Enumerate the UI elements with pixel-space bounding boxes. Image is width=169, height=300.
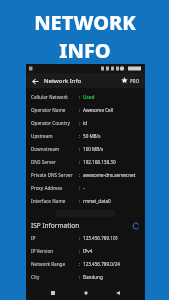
button[interactable]: DNS Server: [26, 155, 145, 168]
staticText: :: [79, 274, 81, 280]
staticText: 192.168.138.30: [83, 159, 116, 165]
staticText: INFO: [59, 37, 111, 64]
staticText: 123.456.789.101: [83, 235, 119, 241]
staticText: :: [79, 235, 81, 241]
button[interactable]: Proxy Address: [26, 181, 145, 194]
staticText: IP: [31, 235, 36, 241]
button[interactable]: Private DNS Server: [26, 168, 145, 181]
staticText: IPv4: [83, 248, 93, 254]
staticText: DNS Server: [31, 159, 56, 165]
button[interactable]: IP Version: [26, 244, 145, 257]
staticText: Cellular Network: [31, 94, 68, 100]
staticText: awesome-dns.server.net: [83, 172, 136, 178]
button[interactable]: PRO: [120, 77, 141, 84]
staticText: :: [79, 198, 81, 204]
staticText: :: [79, 107, 81, 113]
staticText: -: [83, 185, 85, 191]
staticText: :: [79, 248, 81, 254]
staticText: PRO: [130, 78, 140, 84]
button[interactable]: City: [26, 270, 145, 283]
staticText: Operator Name: [31, 107, 66, 113]
staticText: :: [79, 185, 81, 191]
button[interactable]: Refresh: [131, 221, 140, 230]
staticText: :: [79, 159, 81, 165]
button[interactable]: Upstream: [26, 129, 145, 142]
button[interactable]: Operator Name: [26, 103, 145, 116]
staticText: Private DNS Server: [31, 172, 73, 178]
staticText: :: [79, 120, 81, 126]
staticText: :: [79, 94, 81, 100]
staticText: 50 MB/s: [83, 133, 101, 139]
button[interactable]: Downstream: [26, 142, 145, 155]
staticText: :: [79, 133, 81, 139]
staticText: Used: [83, 94, 95, 100]
staticText: :: [79, 172, 81, 178]
staticText: City: [31, 274, 40, 280]
staticText: Downstream: [31, 146, 60, 152]
staticText: ISP Information: [31, 221, 80, 230]
staticText: Upstream: [31, 133, 53, 139]
staticText: id: [83, 120, 88, 126]
staticText: Proxy Address: [31, 185, 63, 191]
button[interactable]: Operator Country: [26, 116, 145, 129]
staticText: rmnet_data0: [83, 198, 111, 204]
staticText: Network Range: [31, 261, 66, 267]
staticText: Interface Name: [31, 198, 66, 204]
staticText: 100 MB/s: [83, 146, 104, 152]
staticText: Network Info: [44, 77, 82, 85]
staticText: 123.456.789.0/24: [83, 261, 120, 267]
staticText: Bandung: [83, 274, 103, 280]
button[interactable]: Recents: [47, 287, 59, 299]
button[interactable]: Home: [80, 287, 92, 299]
button[interactable]: Cellular Network: [26, 90, 145, 103]
staticText: Operator Country: [31, 120, 70, 126]
staticText: :: [79, 146, 81, 152]
button[interactable]: Back: [30, 76, 40, 86]
staticText: NETWORK: [34, 9, 136, 36]
button[interactable]: Network Range: [26, 257, 145, 270]
button[interactable]: Back: [112, 287, 124, 299]
button[interactable]: Interface Name: [26, 194, 145, 207]
staticText: IP Version: [31, 248, 54, 254]
button[interactable]: IP: [26, 231, 145, 244]
staticText: :: [79, 261, 81, 267]
staticText: Awesome Cell: [83, 107, 114, 113]
